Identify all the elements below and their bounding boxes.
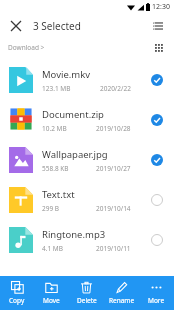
staticText: 10.2 MB [42, 124, 67, 133]
button[interactable]: Copy [0, 276, 34, 310]
staticText: More [148, 296, 165, 305]
button[interactable]: Close [5, 15, 27, 37]
button[interactable]: Selected [147, 70, 167, 90]
staticText: Text.txt [42, 188, 75, 201]
button[interactable]: Rename [104, 276, 139, 310]
button[interactable]: More [139, 276, 174, 310]
staticText: 4.1 MB [42, 244, 63, 253]
button[interactable]: Movie.mkv [0, 60, 174, 100]
button[interactable]: Move [34, 276, 69, 310]
staticText: Ringtone.mp3 [42, 228, 106, 241]
staticText: 558.8 KB [42, 164, 69, 173]
staticText: 2019/10/11 [96, 244, 131, 253]
button[interactable]: Selected [147, 110, 167, 130]
staticText: 2019/10/14 [96, 204, 131, 213]
staticText: 2020/2/22 [100, 84, 131, 93]
button[interactable]: Grid view [149, 38, 169, 58]
button[interactable]: Document.zip [0, 100, 174, 140]
staticText: 2019/10/27 [96, 164, 131, 173]
staticText: Download > [8, 43, 45, 52]
staticText: Move [43, 296, 60, 305]
button[interactable]: Selected [147, 150, 167, 170]
staticText: 2019/10/28 [96, 124, 131, 133]
button[interactable]: Sort [147, 15, 169, 37]
staticText: 299 B [42, 204, 60, 213]
button[interactable]: Delete [69, 276, 104, 310]
staticText: 3 Selected [33, 19, 81, 33]
button[interactable]: Text.txt [0, 180, 174, 220]
staticText: Delete [77, 296, 97, 305]
staticText: 123.1 MB [42, 84, 71, 93]
staticText: Document.zip [42, 108, 104, 121]
staticText: Movie.mkv [42, 68, 91, 81]
staticText: Rename [109, 296, 135, 305]
button[interactable]: Wallpapaer.jpg [0, 140, 174, 180]
staticText: Copy [9, 296, 25, 305]
button[interactable]: Ringtone.mp3 [0, 220, 174, 260]
button[interactable]: Not selected [147, 190, 167, 210]
staticText: 12:30 [152, 2, 170, 12]
staticText: Wallpapaer.jpg [42, 148, 108, 161]
button[interactable]: Not selected [147, 230, 167, 250]
